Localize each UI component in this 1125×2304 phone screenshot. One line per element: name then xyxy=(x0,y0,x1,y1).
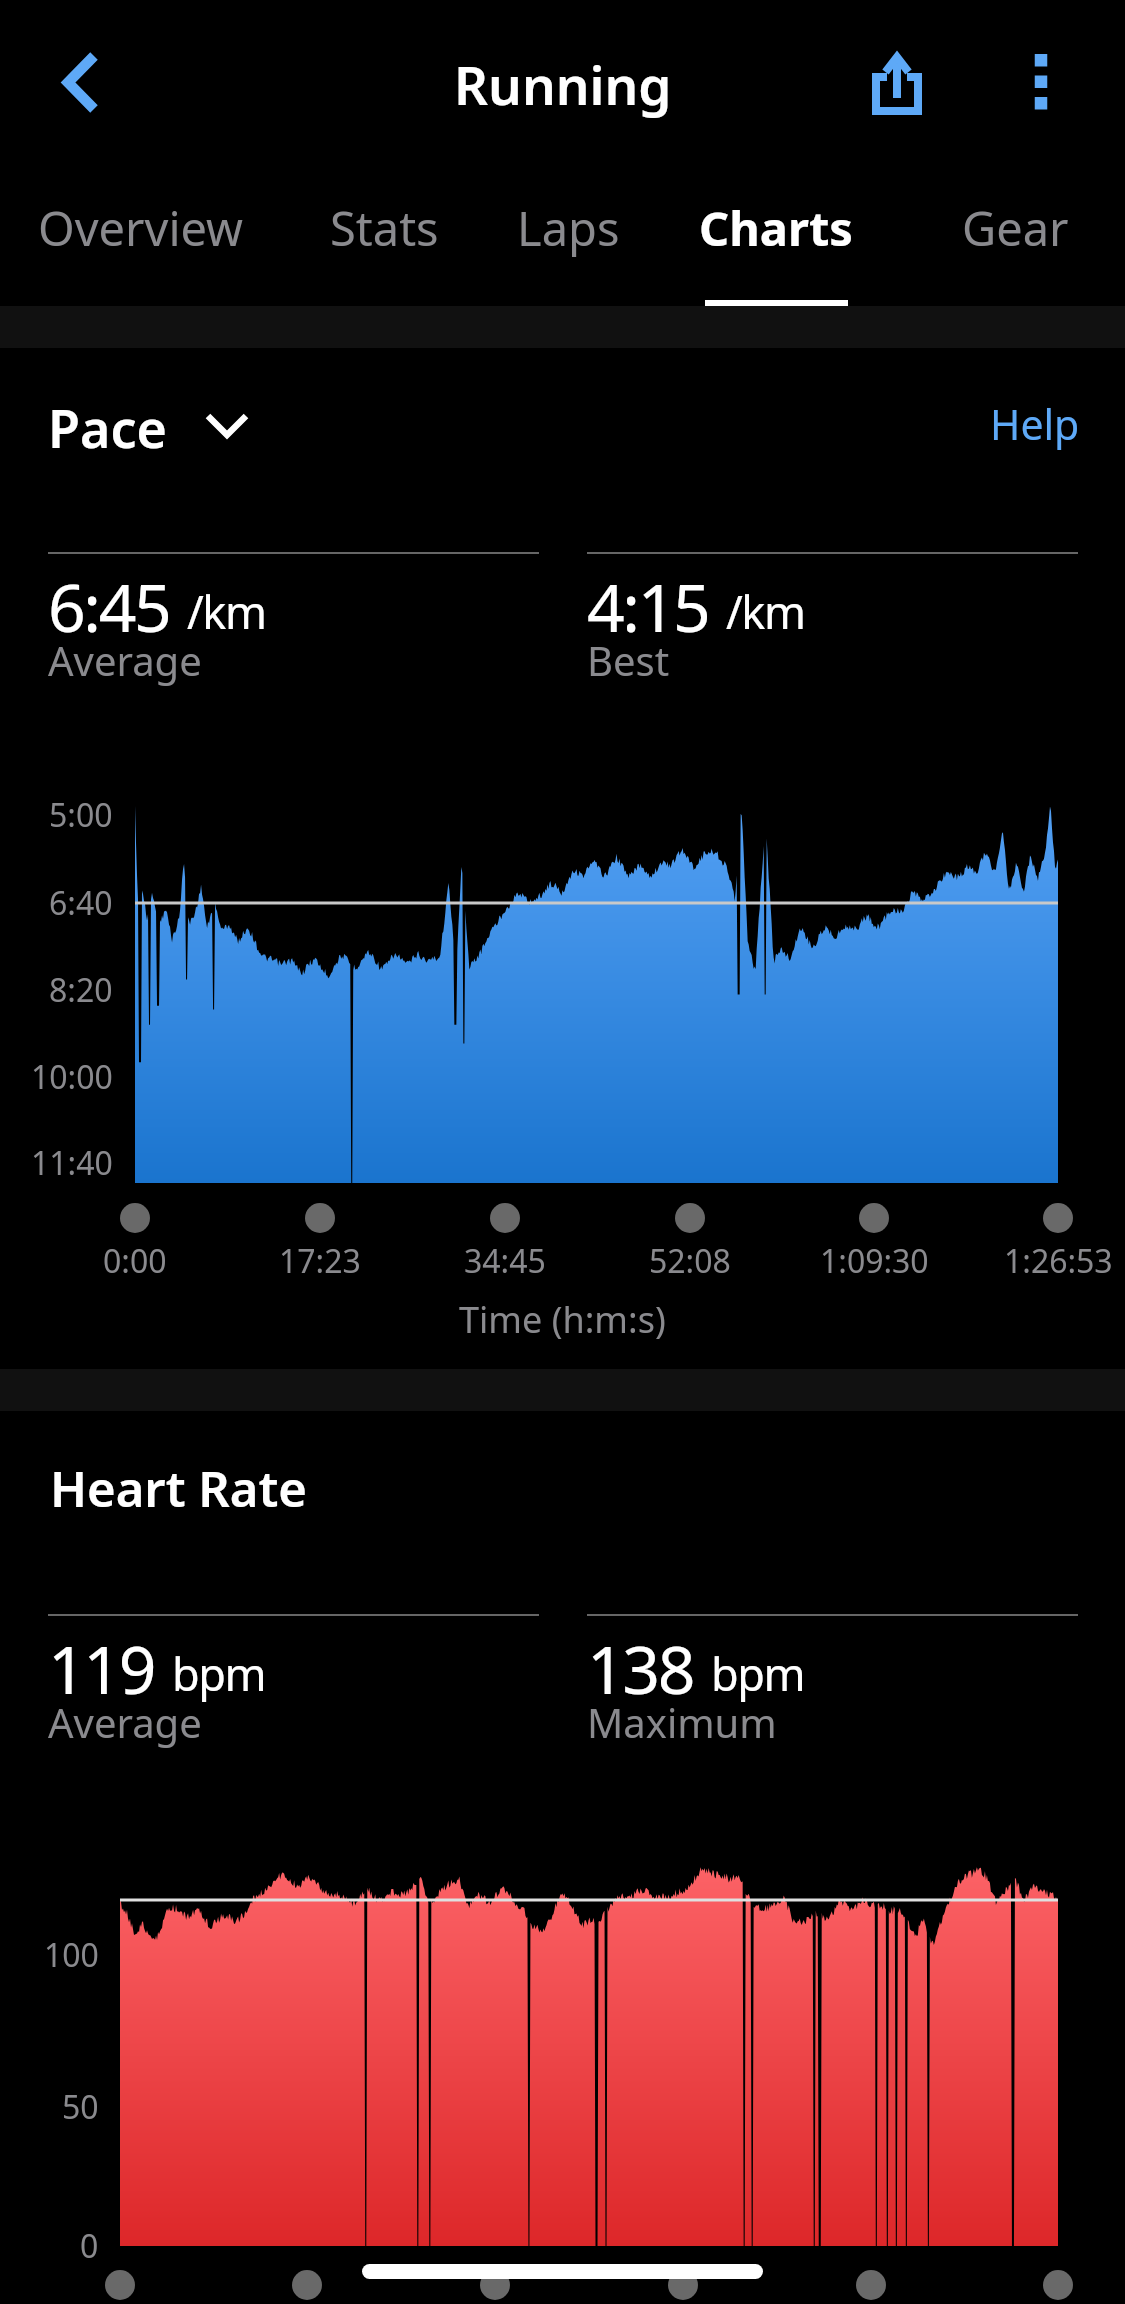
staticText: 100 xyxy=(44,1933,99,1977)
button[interactable]: Laps xyxy=(488,160,648,306)
button[interactable]: Pace chart marker 1 xyxy=(120,1203,150,1233)
button[interactable]: Heart rate chart marker 4 xyxy=(668,2270,698,2300)
staticText: Laps xyxy=(517,196,620,260)
staticText: 52:08 xyxy=(649,1239,731,1283)
staticText: Average xyxy=(48,633,202,687)
staticText: 138 xyxy=(587,1623,694,1713)
staticText: 5:00 xyxy=(49,793,113,837)
staticText: 0 xyxy=(80,2224,99,2268)
staticText: 6:45 xyxy=(48,561,170,651)
staticText: Average xyxy=(48,1695,202,1749)
staticText: Help xyxy=(990,396,1080,452)
staticText: 8:20 xyxy=(49,968,113,1012)
button[interactable]: Gear xyxy=(933,160,1097,306)
staticText: Charts xyxy=(699,196,853,260)
staticText: Running xyxy=(454,48,672,120)
staticText: /km xyxy=(726,581,805,642)
button[interactable]: Heart rate chart marker 1 xyxy=(105,2270,135,2300)
button[interactable]: Pace chart marker 4 xyxy=(675,1203,705,1233)
button[interactable]: Pace chart marker 6 xyxy=(1043,1203,1073,1233)
button[interactable]: Heart rate chart marker 2 xyxy=(292,2270,322,2300)
staticText: Stats xyxy=(330,196,439,260)
button[interactable]: Pace chart marker 5 xyxy=(859,1203,889,1233)
staticText: 0:00 xyxy=(103,1239,167,1283)
staticText: 4:15 xyxy=(587,561,709,651)
staticText: Maximum xyxy=(587,1695,777,1749)
staticText: 119 xyxy=(48,1623,155,1713)
button[interactable]: Back xyxy=(12,29,150,139)
button[interactable]: Pace chart marker 2 xyxy=(305,1203,335,1233)
staticText: 1:09:30 xyxy=(820,1239,929,1283)
staticText: 17:23 xyxy=(279,1239,361,1283)
staticText: /km xyxy=(187,581,266,642)
button[interactable]: Heart rate chart marker 6 xyxy=(1043,2270,1073,2300)
button[interactable]: Help xyxy=(976,386,1094,462)
staticText: 11:40 xyxy=(31,1141,113,1185)
staticText: 6:40 xyxy=(49,881,113,925)
staticText: 10:00 xyxy=(31,1055,113,1099)
button[interactable]: More options xyxy=(986,30,1096,140)
staticText: 34:45 xyxy=(464,1239,546,1283)
button[interactable]: Share xyxy=(837,28,957,138)
button[interactable]: Pace chart marker 3 xyxy=(490,1203,520,1233)
button[interactable]: Charts xyxy=(681,160,871,306)
staticText: bpm xyxy=(172,1643,266,1704)
staticText: Heart Rate xyxy=(50,1455,308,1522)
button[interactable]: Stats xyxy=(296,160,472,306)
button[interactable]: Heart rate chart marker 5 xyxy=(856,2270,886,2300)
staticText: 1:26:53 xyxy=(1004,1239,1113,1283)
staticText: bpm xyxy=(711,1643,805,1704)
staticText: Time (h:m:s) xyxy=(459,1295,666,1344)
staticText: Pace xyxy=(48,392,167,460)
button[interactable]: Heart rate chart marker 3 xyxy=(480,2270,510,2300)
button[interactable]: Pace xyxy=(30,378,282,460)
staticText: Best xyxy=(587,633,670,687)
button[interactable]: Overview xyxy=(23,160,259,306)
staticText: Gear xyxy=(962,196,1069,260)
staticText: Overview xyxy=(38,196,244,260)
staticText: 50 xyxy=(62,2085,99,2129)
